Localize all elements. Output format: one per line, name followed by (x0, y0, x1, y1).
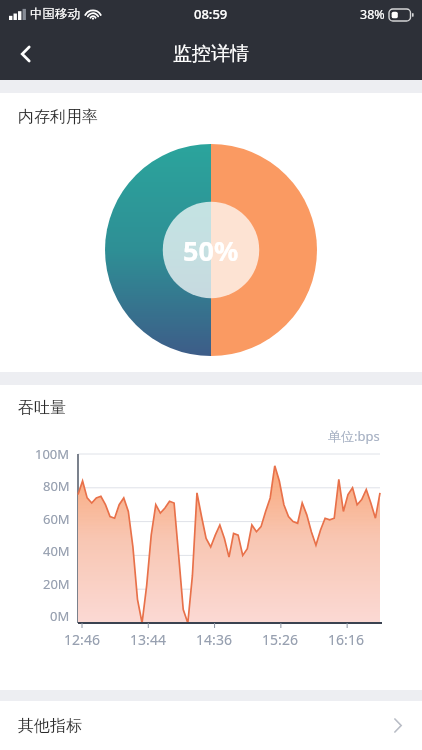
staticText: 13:44 (126, 630, 170, 649)
staticText: 100M (35, 445, 70, 463)
staticText: 15:26 (258, 630, 302, 649)
staticText: 监控详情 (173, 42, 249, 66)
staticText: 38% (360, 6, 385, 23)
button[interactable]: 其他指标 (0, 701, 422, 750)
staticText: 60M (43, 510, 70, 528)
staticText: 12:46 (60, 630, 104, 649)
staticText: 14:36 (192, 630, 236, 649)
staticText: 08:59 (194, 5, 228, 23)
staticText: 50% (183, 232, 239, 269)
staticText: 20M (43, 575, 70, 593)
staticText: 40M (43, 542, 70, 560)
staticText: 其他指标 (18, 716, 82, 736)
staticText: 吞吐量 (18, 398, 66, 418)
button[interactable]: Back (0, 28, 52, 80)
staticText: 0M (50, 607, 70, 625)
staticText: 单位:bps (328, 427, 380, 445)
staticText: 中国移动 (30, 6, 80, 22)
staticText: 内存利用率 (18, 107, 98, 127)
staticText: 16:16 (324, 630, 368, 649)
staticText: 80M (43, 477, 70, 495)
